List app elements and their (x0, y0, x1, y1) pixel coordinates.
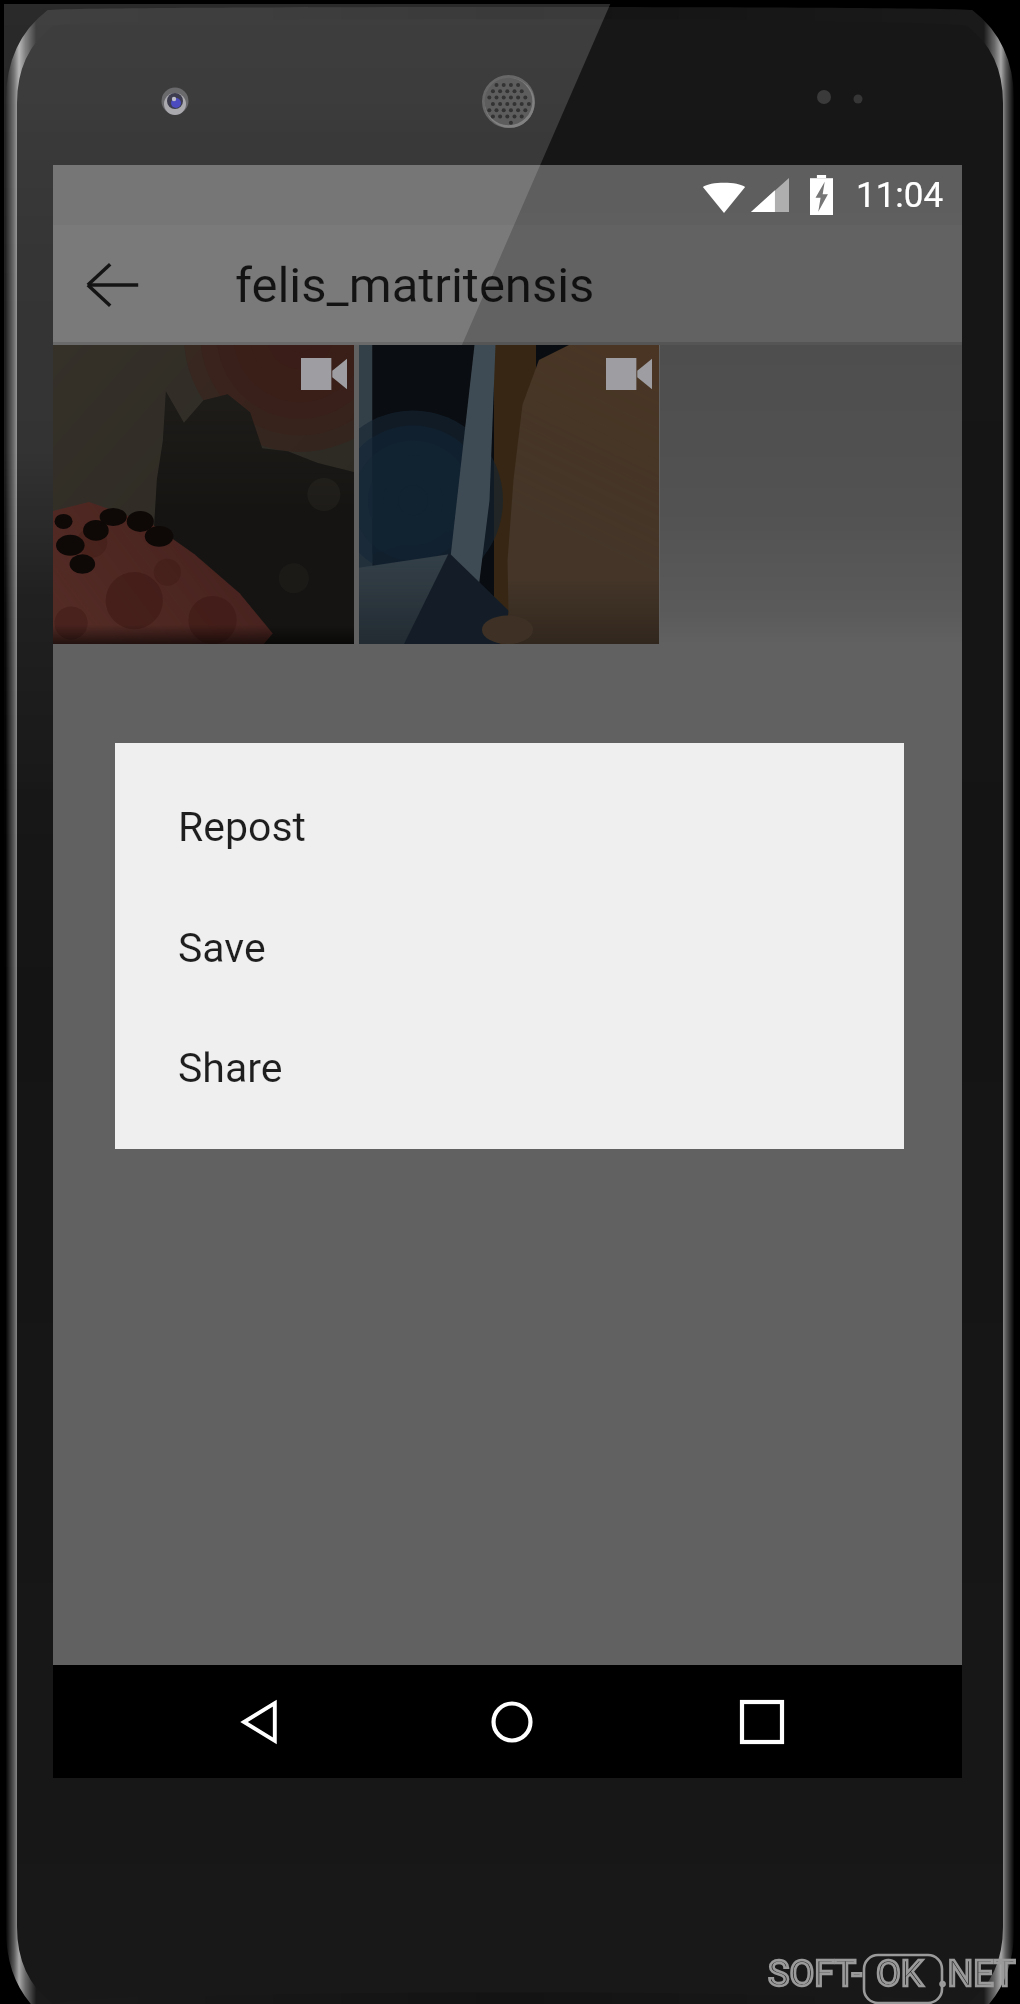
button[interactable]: Recents (705, 1665, 818, 1778)
button[interactable]: Back (204, 1665, 317, 1778)
button[interactable] (53, 345, 354, 644)
button[interactable]: Back (53, 225, 173, 345)
button[interactable]: Home (455, 1665, 568, 1778)
staticText: Save (178, 924, 266, 972)
staticText: Repost (178, 803, 306, 851)
staticText: 11:04 (856, 175, 944, 216)
button[interactable] (359, 345, 659, 644)
button[interactable]: Share (115, 1008, 904, 1128)
button[interactable]: Repost (115, 767, 904, 887)
staticText: OK (876, 1953, 924, 1995)
staticText: Share (178, 1044, 283, 1092)
button[interactable]: Save (115, 888, 904, 1008)
staticText: felis_matritensis (235, 257, 595, 314)
staticText: .NET (938, 1953, 1016, 1995)
staticText: SOFT- (768, 1953, 862, 1995)
